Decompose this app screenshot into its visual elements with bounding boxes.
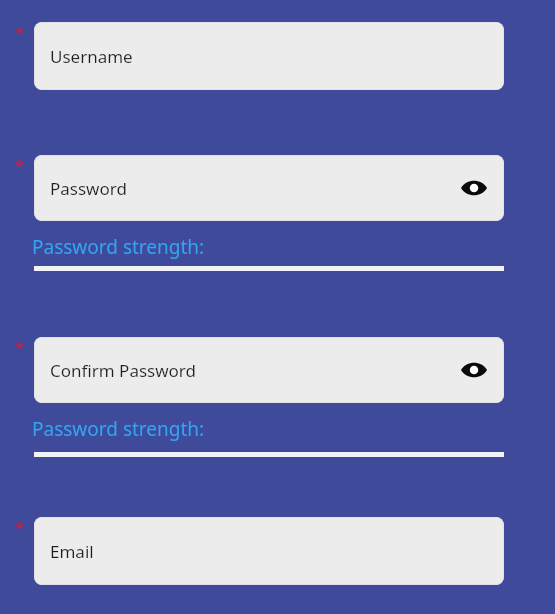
button[interactable]: Show password (456, 170, 492, 206)
button[interactable]: Username (34, 22, 504, 90)
staticText: Username (50, 45, 133, 68)
staticText: Password strength: (32, 234, 205, 260)
staticText: * (15, 517, 24, 531)
staticText: Confirm Password (50, 359, 196, 382)
staticText: Password (50, 177, 127, 200)
button[interactable]: Email (34, 517, 504, 585)
button[interactable]: Show password (456, 352, 492, 388)
button[interactable]: Confirm Password (34, 337, 504, 403)
staticText: * (15, 22, 24, 36)
button[interactable]: Password (34, 155, 504, 221)
staticText: Email (50, 540, 94, 563)
staticText: * (15, 337, 24, 351)
staticText: * (15, 155, 24, 169)
staticText: Password strength: (32, 416, 205, 442)
